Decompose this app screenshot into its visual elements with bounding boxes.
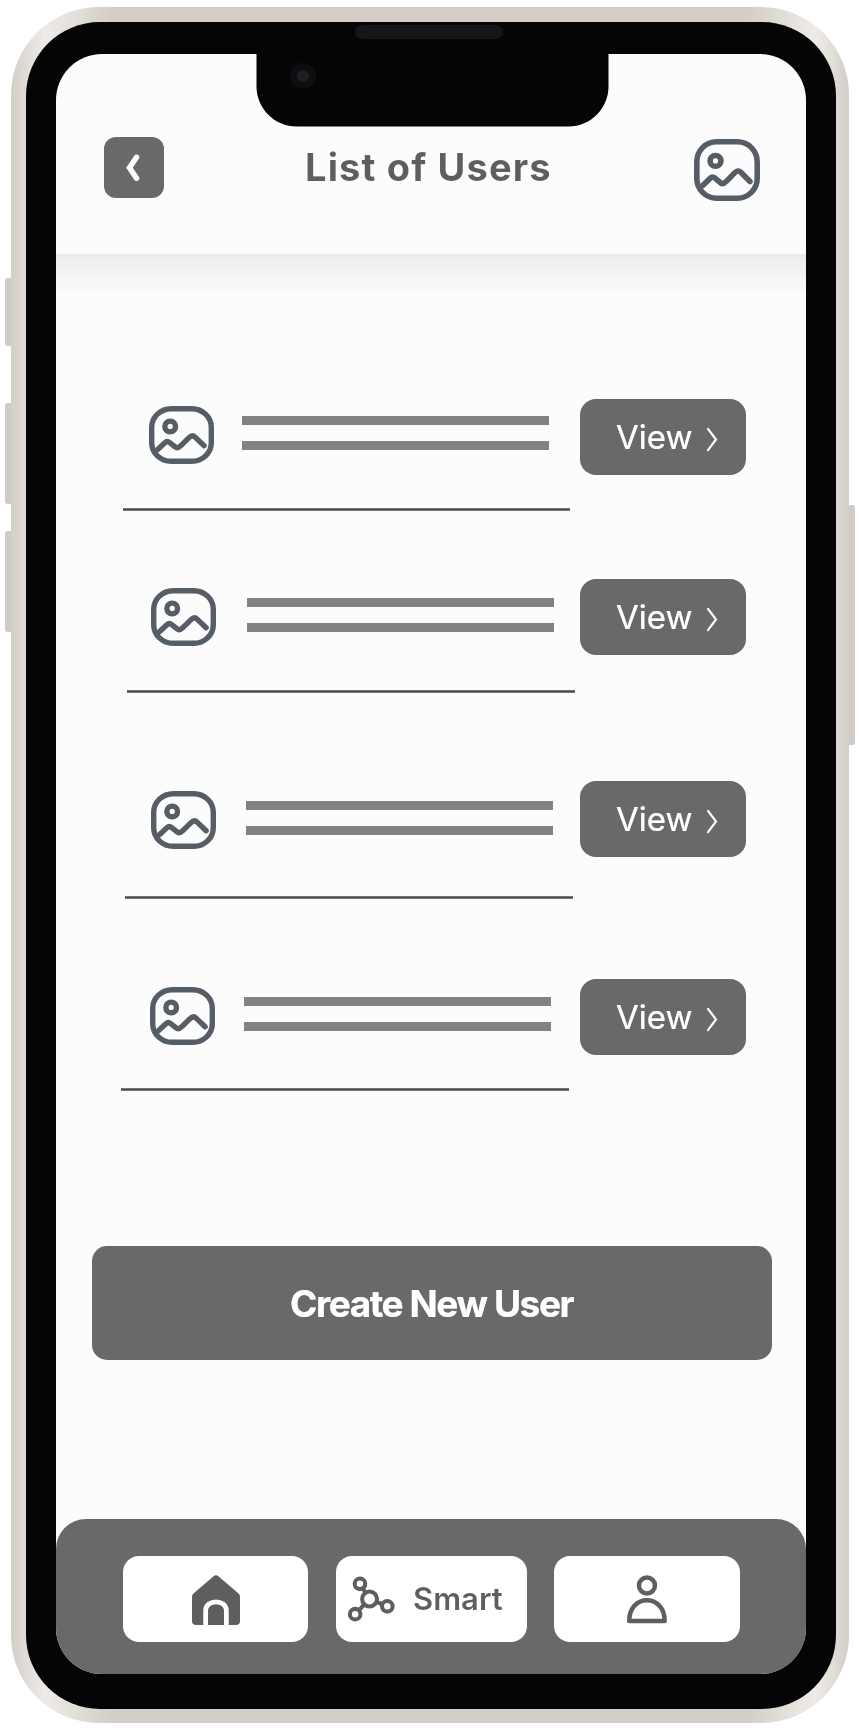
button[interactable]: View [580, 781, 746, 857]
staticText: View [616, 597, 693, 637]
button[interactable]: View [580, 579, 746, 655]
button[interactable]: User avatar [151, 588, 216, 646]
button[interactable]: Create New User [92, 1246, 772, 1360]
staticText: Smart [413, 1580, 503, 1618]
staticText: View [616, 799, 693, 839]
button[interactable]: Gallery [694, 139, 760, 201]
button[interactable]: Home [123, 1556, 308, 1642]
staticText: List of Users [305, 144, 552, 190]
button[interactable]: Profile [554, 1556, 740, 1642]
button[interactable]: View [580, 399, 746, 475]
staticText: View [616, 997, 693, 1037]
button[interactable]: Back [104, 137, 164, 198]
staticText: Create New User [290, 1281, 574, 1326]
button[interactable]: User avatar [150, 987, 215, 1045]
staticText: View [616, 417, 693, 457]
button[interactable]: Smart [336, 1556, 527, 1642]
button[interactable]: View [580, 979, 746, 1055]
button[interactable]: User avatar [151, 791, 216, 849]
button[interactable]: User avatar [149, 406, 214, 464]
